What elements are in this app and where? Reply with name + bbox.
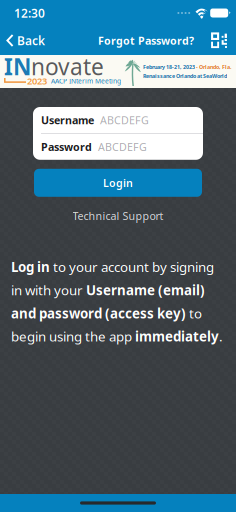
staticText: Login [103,176,133,190]
staticText: Back [17,32,45,48]
button[interactable]: Technical Support [72,205,163,227]
staticText: ABCDEFG [98,140,147,154]
button[interactable]: Login [34,169,202,197]
staticText: 12:30 [14,5,45,21]
staticText: Renaissance Orlando at SeaWorld [143,72,227,80]
staticText: IN [4,51,31,81]
staticText: Forgot Password? [98,33,194,48]
staticText: Username [41,113,94,127]
staticText: February 18-21, 2023 [143,63,196,70]
staticText: ABCDEFG [100,113,149,127]
staticText: Technical Support [72,209,163,223]
staticText: - Orlando, Fla. [196,63,231,70]
staticText: AACP INterim Meeting [51,77,121,85]
staticText: Password [41,140,92,154]
button[interactable]: Scan QR code [208,29,236,52]
staticText: 2023 [27,75,47,87]
button[interactable]: Back [0,27,51,53]
staticText: novate [31,51,104,81]
staticText: Log in to your account by signing in wit… [11,258,223,345]
